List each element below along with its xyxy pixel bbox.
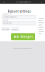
button[interactable]: Save changes: [11, 33, 35, 40]
staticText: Business: [11, 28, 18, 30]
button[interactable]: Business: [11, 28, 19, 31]
button[interactable]: Personal: [2, 28, 9, 31]
staticText: Personal: [2, 28, 9, 30]
staticText: you@example.com: [3, 16, 16, 18]
staticText: Save changes: [13, 35, 32, 38]
staticText: Email address: [2, 13, 12, 15]
staticText: Full name: [2, 19, 8, 21]
staticText: Need help? Contact support: [13, 47, 32, 49]
staticText: Alex Morgan: [3, 22, 12, 24]
staticText: account.example.com: [15, 1, 30, 3]
staticText: Account settings: [7, 10, 30, 13]
